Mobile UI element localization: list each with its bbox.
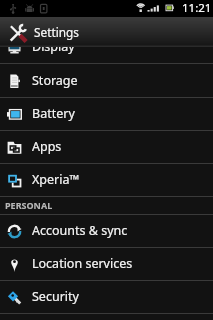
staticText: Settings (34, 24, 79, 40)
staticText: PERSONAL (5, 199, 53, 211)
staticText: 11:21 (182, 0, 212, 16)
staticText: Display (32, 38, 75, 55)
button[interactable]: Security (0, 281, 213, 314)
button[interactable]: Apps (0, 131, 213, 164)
button[interactable]: Battery (0, 98, 213, 131)
staticText: Storage (32, 72, 78, 89)
staticText: Location services (32, 255, 133, 272)
staticText: Xperia™ (32, 171, 80, 188)
staticText: Battery (32, 105, 75, 122)
staticText: Apps (32, 138, 62, 155)
staticText: Accounts & sync (32, 222, 128, 239)
button[interactable]: Location services (0, 248, 213, 281)
button[interactable]: Settings (0, 17, 213, 47)
button[interactable]: Accounts & sync (0, 215, 213, 248)
button[interactable]: Display (0, 30, 213, 64)
button[interactable]: Xperia™ (0, 164, 213, 197)
button[interactable]: Storage (0, 64, 213, 98)
staticText: Security (32, 288, 79, 305)
